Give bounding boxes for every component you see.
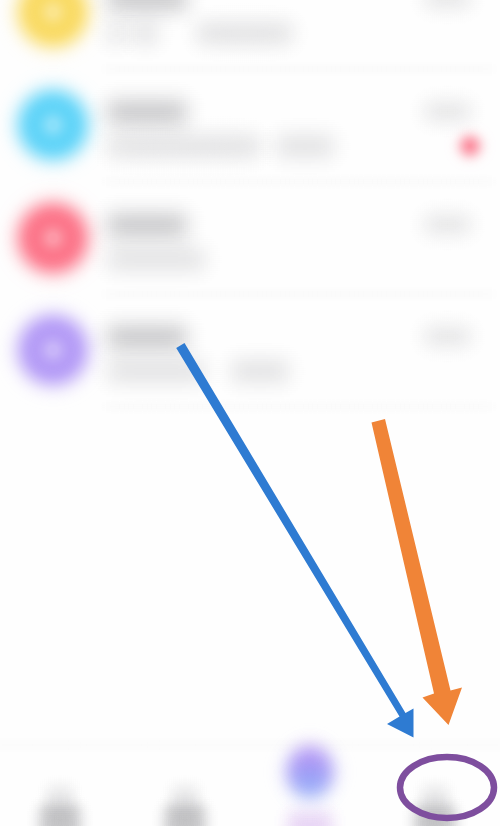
button[interactable]: 会话 2 xyxy=(0,112,500,224)
button[interactable]: 会话 1 xyxy=(0,0,500,112)
button[interactable]: 我的 xyxy=(375,747,500,826)
button[interactable]: 会话 4 xyxy=(0,336,500,448)
button[interactable]: 消息 xyxy=(0,747,125,826)
button[interactable]: 会话 3 xyxy=(0,224,500,336)
button[interactable]: 发现 xyxy=(250,747,375,826)
button[interactable]: 通讯录 xyxy=(125,747,250,826)
